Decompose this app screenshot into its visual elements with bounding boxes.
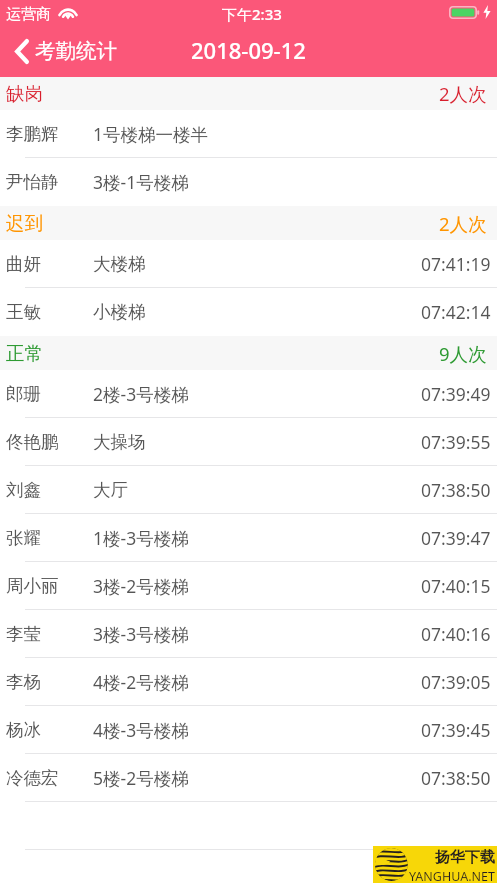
staticText: 07:39:05 [421,670,491,694]
button[interactable]: 郎珊 [0,370,497,418]
button[interactable]: 张耀 [0,514,497,562]
staticText: 下午2:33 [222,4,282,24]
button[interactable]: 李杨 [0,658,497,706]
staticText: 杨冰 [6,719,41,741]
staticText: 07:38:50 [421,478,491,502]
staticText: 周小丽 [6,575,59,597]
staticText: 07:39:55 [421,430,491,454]
staticText: 扬华下载 [435,848,495,867]
staticText: 运营商 [6,5,51,24]
staticText: 刘鑫 [6,479,41,501]
staticText: 大操场 [93,431,146,453]
button[interactable]: 李鹏辉 [0,110,497,158]
staticText: 4楼-3号楼梯 [93,718,189,742]
button[interactable]: 刘鑫 [0,466,497,514]
staticText: 李杨 [6,671,41,693]
staticText: 07:39:45 [421,718,491,742]
staticText: 07:41:19 [421,252,491,276]
staticText: 大厅 [93,479,128,501]
staticText: 3楼-3号楼梯 [93,622,189,646]
staticText: 冷德宏 [6,767,59,789]
staticText: 4楼-2号楼梯 [93,670,189,694]
staticText: 正常 [6,342,43,365]
staticText: 07:40:15 [421,574,491,598]
staticText: 07:39:49 [421,382,491,406]
staticText: 07:42:14 [421,300,491,324]
button[interactable]: 佟艳鹏 [0,418,497,466]
staticText: 1号楼梯一楼半 [93,122,209,146]
staticText: 缺岗 [6,82,43,105]
staticText: 9人次 [439,341,487,366]
staticText: 李鹏辉 [6,123,59,145]
staticText: 张耀 [6,527,41,549]
staticText: 3楼-2号楼梯 [93,574,189,598]
staticText: 大楼梯 [93,253,146,275]
button[interactable]: Back [0,34,127,72]
staticText: 5楼-2号楼梯 [93,766,189,790]
button[interactable]: 曲妍 [0,240,497,288]
staticText: 佟艳鹏 [6,431,59,453]
staticText: 2018-09-12 [191,35,306,65]
staticText: 07:39:47 [421,526,491,550]
button[interactable]: 杨冰 [0,706,497,754]
button[interactable]: 王敏 [0,288,497,336]
staticText: 2楼-3号楼梯 [93,382,189,406]
staticText: 2人次 [439,81,487,106]
button[interactable] [0,802,497,850]
staticText: 小楼梯 [93,301,146,323]
staticText: 07:38:50 [421,766,491,790]
button[interactable]: 李莹 [0,610,497,658]
staticText: 考勤统计 [35,38,117,64]
button[interactable]: 周小丽 [0,562,497,610]
staticText: 3楼-1号楼梯 [93,170,189,194]
button[interactable]: 尹怡静 [0,158,497,206]
staticText: 07:40:16 [421,622,491,646]
staticText: 迟到 [6,212,43,235]
staticText: 1楼-3号楼梯 [93,526,189,550]
staticText: 尹怡静 [6,171,59,193]
button[interactable]: 冷德宏 [0,754,497,802]
staticText: 李莹 [6,623,41,645]
staticText: 郎珊 [6,383,41,405]
staticText: YANGHUA.NET [409,868,495,883]
staticText: 曲妍 [6,253,41,275]
staticText: 王敏 [6,301,41,323]
staticText: 2人次 [439,211,487,236]
